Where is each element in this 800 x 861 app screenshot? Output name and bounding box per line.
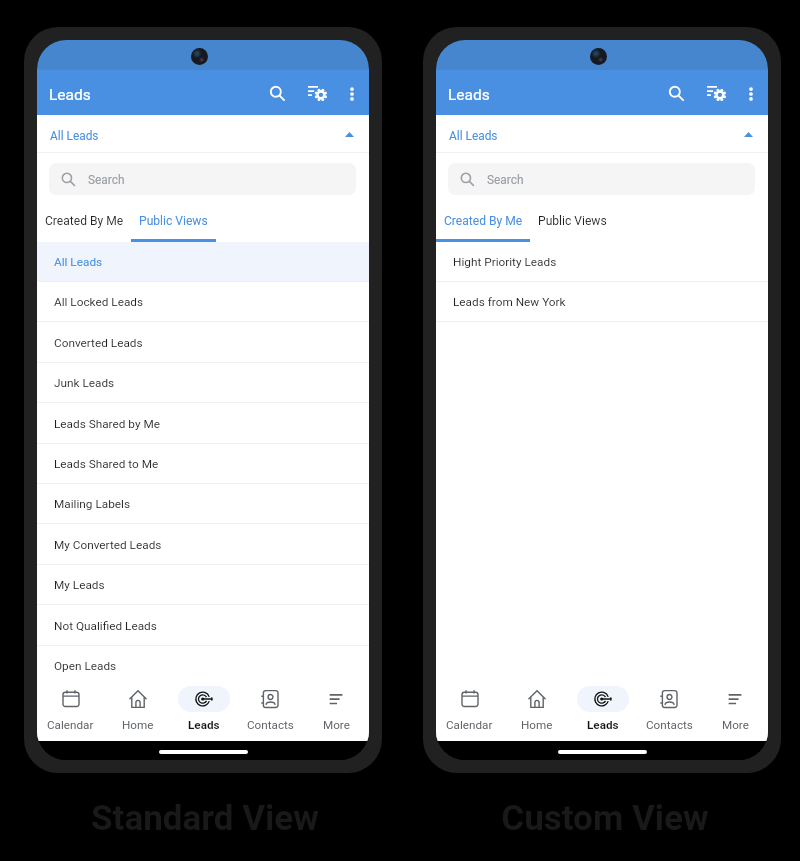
staticText: Search bbox=[487, 173, 524, 187]
button[interactable]: Public Views bbox=[131, 195, 216, 242]
staticText: Public Views bbox=[538, 214, 607, 228]
staticText: Standard View bbox=[91, 798, 319, 839]
button[interactable]: Created By Me bbox=[436, 195, 530, 242]
staticText: Custom View bbox=[501, 798, 709, 839]
button[interactable]: Created By Me bbox=[37, 195, 131, 242]
staticText: Junk Leads bbox=[54, 376, 115, 390]
staticText: Leads bbox=[49, 86, 91, 104]
button[interactable]: Hight Priority Leads bbox=[436, 242, 768, 281]
staticText: Mailing Labels bbox=[54, 497, 130, 511]
button[interactable]: Search bbox=[258, 74, 296, 112]
staticText: Hight Priority Leads bbox=[453, 255, 557, 269]
staticText: All Leads bbox=[54, 255, 103, 269]
button[interactable]: More options bbox=[334, 75, 369, 113]
staticText: Calendar bbox=[47, 718, 94, 732]
staticText: Converted Leads bbox=[54, 336, 143, 350]
staticText: Calendar bbox=[446, 718, 493, 732]
staticText: More bbox=[722, 718, 749, 732]
button[interactable]: Sort and filter settings bbox=[701, 73, 739, 111]
staticText: Leads Shared by Me bbox=[54, 417, 160, 431]
button[interactable]: All Leads bbox=[436, 115, 768, 152]
button[interactable]: More bbox=[303, 673, 369, 741]
button[interactable]: Calendar bbox=[37, 673, 104, 741]
staticText: Leads bbox=[188, 718, 220, 732]
button[interactable]: Search bbox=[657, 74, 695, 112]
button[interactable]: Home bbox=[104, 673, 171, 741]
staticText: All Leads bbox=[50, 129, 99, 143]
button[interactable]: Sort and filter settings bbox=[302, 73, 340, 111]
staticText: Leads from New York bbox=[453, 295, 566, 309]
staticText: Qualified Leads bbox=[54, 699, 135, 713]
button[interactable]: My Converted Leads bbox=[37, 525, 369, 564]
staticText: My Converted Leads bbox=[54, 538, 162, 552]
staticText: Not Qualified Leads bbox=[54, 619, 157, 633]
staticText: My Leads bbox=[54, 578, 105, 592]
button[interactable]: Open Leads bbox=[37, 646, 369, 685]
button[interactable]: Contacts bbox=[636, 673, 702, 741]
button[interactable]: More options bbox=[733, 75, 768, 113]
staticText: Open Leads bbox=[54, 659, 117, 673]
button[interactable]: Mailing Labels bbox=[37, 484, 369, 523]
staticText: Created By Me bbox=[444, 214, 523, 228]
staticText: Created By Me bbox=[45, 214, 124, 228]
button[interactable]: Search bbox=[448, 163, 755, 195]
button[interactable]: All Leads bbox=[37, 242, 369, 281]
button[interactable]: Leads bbox=[570, 673, 636, 741]
button[interactable]: Converted Leads bbox=[37, 323, 369, 362]
button[interactable]: Not Qualified Leads bbox=[37, 606, 369, 645]
button[interactable]: More bbox=[702, 673, 768, 741]
button[interactable]: Leads from New York bbox=[436, 282, 768, 321]
staticText: Home bbox=[122, 718, 154, 732]
staticText: Leads Shared to Me bbox=[54, 457, 159, 471]
staticText: Home bbox=[521, 718, 553, 732]
button[interactable]: All Leads bbox=[37, 115, 369, 152]
button[interactable]: Leads Shared by Me bbox=[37, 404, 369, 443]
staticText: All Locked Leads bbox=[54, 295, 144, 309]
staticText: All Leads bbox=[449, 129, 498, 143]
staticText: More bbox=[323, 718, 350, 732]
staticText: Search bbox=[88, 173, 125, 187]
staticText: Public Views bbox=[139, 214, 208, 228]
staticText: Contacts bbox=[646, 718, 693, 732]
button[interactable]: All Locked Leads bbox=[37, 282, 369, 321]
button[interactable]: Home bbox=[503, 673, 570, 741]
button[interactable]: Leads Shared to Me bbox=[37, 444, 369, 483]
button[interactable]: Search bbox=[49, 163, 356, 195]
button[interactable]: Public Views bbox=[530, 195, 615, 242]
button[interactable]: Leads bbox=[171, 673, 237, 741]
button[interactable]: Junk Leads bbox=[37, 363, 369, 402]
button[interactable]: Qualified Leads bbox=[37, 686, 369, 725]
button[interactable]: Calendar bbox=[436, 673, 503, 741]
button[interactable]: Contacts bbox=[237, 673, 303, 741]
staticText: Leads bbox=[448, 86, 490, 104]
staticText: Contacts bbox=[247, 718, 294, 732]
button[interactable]: My Leads bbox=[37, 565, 369, 604]
staticText: Leads bbox=[587, 718, 619, 732]
